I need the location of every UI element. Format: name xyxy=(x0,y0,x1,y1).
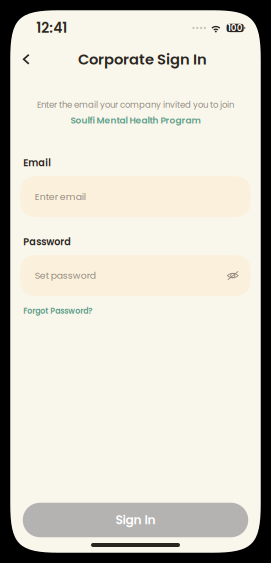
button[interactable]: Enter email xyxy=(20,176,251,217)
staticText: 100 xyxy=(228,22,243,34)
staticText: Password xyxy=(23,235,71,248)
staticText: 12:41 xyxy=(36,18,67,38)
staticText: Forgot Password? xyxy=(23,306,92,317)
staticText: Soulfi Mental Health Program xyxy=(70,114,200,127)
staticText: Set password xyxy=(35,269,96,282)
button[interactable]: Soulfi Mental Health Program xyxy=(70,114,200,127)
button[interactable]: Forgot Password? xyxy=(23,306,92,317)
button[interactable]: Sign In xyxy=(23,503,248,537)
button[interactable]: Back xyxy=(14,47,38,71)
staticText: Corporate Sign In xyxy=(78,49,207,69)
staticText: Email xyxy=(23,156,51,170)
staticText: Sign In xyxy=(115,511,155,529)
staticText: Enter email xyxy=(35,190,86,203)
staticText: Enter the email your company invited you… xyxy=(37,99,234,111)
button[interactable]: Set password xyxy=(20,255,251,296)
